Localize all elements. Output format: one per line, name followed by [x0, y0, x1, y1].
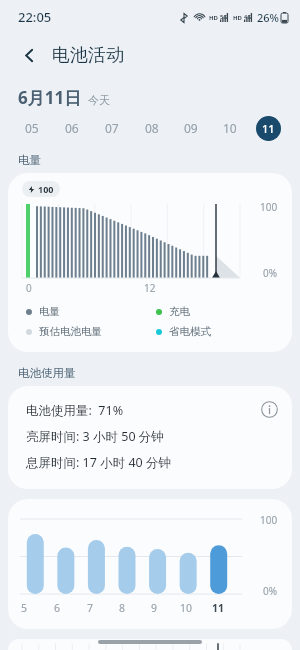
staticText: 预估电池电量	[39, 325, 102, 338]
staticText: 充电	[169, 305, 190, 318]
staticText: 08	[145, 120, 159, 136]
staticText: 10	[180, 601, 193, 615]
button[interactable]: 10	[8, 639, 292, 650]
button[interactable]: 电池使用量: 71%	[8, 386, 292, 489]
staticText: 今天	[88, 93, 110, 107]
staticText: 05	[25, 120, 39, 136]
staticText: 电池活动	[52, 44, 124, 67]
button[interactable]: 100	[8, 499, 292, 629]
staticText: 6	[54, 601, 61, 615]
staticText: 12	[144, 281, 156, 295]
button[interactable]: 100	[8, 173, 292, 352]
staticText: 10	[223, 120, 237, 136]
staticText: 6月11日	[18, 86, 82, 109]
staticText: 07	[105, 120, 119, 136]
staticText: 9	[151, 601, 158, 615]
staticText: 4G	[244, 13, 252, 20]
button[interactable]: 08	[132, 111, 171, 145]
staticText: HD	[209, 14, 218, 22]
button[interactable]: 07	[92, 111, 132, 145]
staticText: 电量	[39, 305, 60, 318]
button[interactable]: 11	[249, 111, 288, 145]
button[interactable]: 10	[210, 111, 249, 145]
staticText: 11	[212, 601, 225, 615]
staticText: 电池使用量	[18, 366, 76, 380]
staticText: 电量	[18, 153, 41, 167]
staticText: 0	[26, 281, 32, 295]
staticText: 0%	[263, 584, 278, 598]
staticText: 100	[260, 513, 278, 527]
staticText: 06	[65, 120, 79, 136]
staticText: 100	[260, 200, 278, 214]
staticText: 11	[262, 121, 275, 136]
button[interactable]: 05	[12, 111, 52, 145]
staticText: 亮屏时间: 3 小时 50 分钟	[26, 428, 164, 445]
staticText: 息屏时间: 17 小时 40 分钟	[26, 454, 171, 471]
staticText: 省电模式	[169, 325, 211, 338]
staticText: 09	[184, 120, 198, 136]
staticText: HD	[233, 14, 242, 22]
button[interactable]: 06	[52, 111, 92, 145]
staticText: 5G	[220, 13, 228, 20]
staticText: 电池使用量: 71%	[26, 402, 124, 419]
staticText: 22:05	[18, 8, 52, 26]
staticText: 8	[119, 601, 126, 615]
staticText: 5	[21, 601, 28, 615]
staticText: 0%	[263, 266, 278, 280]
button[interactable]: More information	[252, 392, 286, 426]
staticText: 100	[38, 183, 54, 195]
button[interactable]: Back	[12, 38, 46, 72]
staticText: 7	[87, 601, 94, 615]
staticText: 26%	[257, 10, 279, 25]
button[interactable]: 09	[171, 111, 210, 145]
